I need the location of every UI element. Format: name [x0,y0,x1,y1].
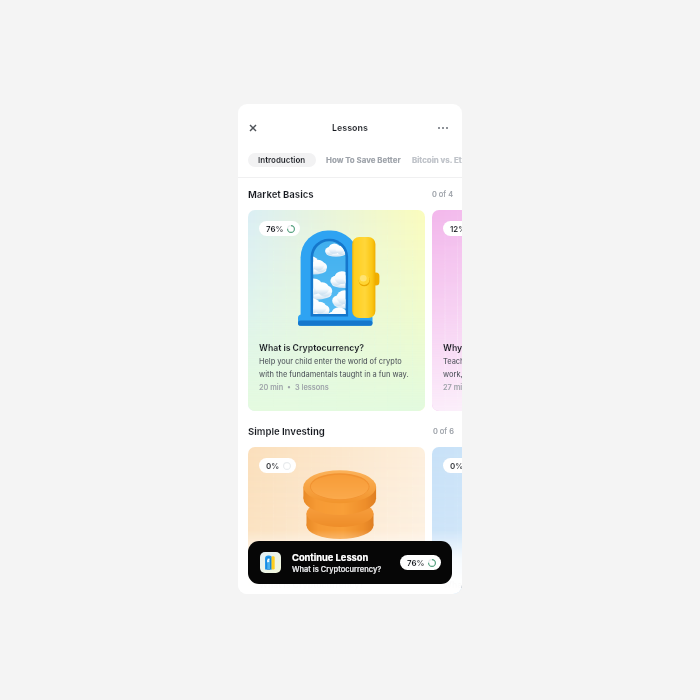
button[interactable]: 12% [432,210,462,411]
staticText: What is Cryptocurrency? [259,580,365,590]
staticText: Help your child enter the world of crypt… [259,357,409,379]
button[interactable]: 0% [432,447,462,594]
button[interactable]: Close [240,115,266,141]
staticText: Market Basics [248,189,314,200]
staticText: Bitcoin vs. Ethereum [412,155,462,165]
button[interactable]: How To Save Better [325,153,402,167]
staticText: 27 min • 4 lessons [443,383,462,392]
button[interactable]: 76% [248,210,425,411]
staticText: 76% [266,224,284,233]
staticText: 12% [450,224,462,233]
staticText: 0% [450,461,462,470]
staticText: What is Money? [443,580,462,590]
staticText: Continue Lesson [292,552,369,563]
staticText: 0 of 4 [432,190,454,199]
staticText: Introduction [258,155,306,165]
staticText: 20 min • 3 lessons [259,383,329,392]
staticText: Why Do We Save? [443,343,462,353]
button[interactable]: Continue Lesson [248,541,452,584]
staticText: What is Cryptocurrency? [292,565,382,574]
staticText: 0 of 6 [433,427,454,436]
staticText: Simple Investing [248,426,325,437]
button[interactable]: 0% [248,447,425,594]
staticText: How To Save Better [326,155,401,165]
staticText: 76% [407,558,425,567]
staticText: What is Cryptocurrency? [259,343,365,353]
button[interactable]: Bitcoin vs. Ethereum [411,153,462,167]
button[interactable]: Introduction [248,153,316,167]
staticText: 0% [266,461,280,470]
staticText: Teach kids how savings accounts work, an… [443,357,462,379]
staticText: Lessons [332,122,368,133]
button[interactable]: More options [430,115,456,141]
